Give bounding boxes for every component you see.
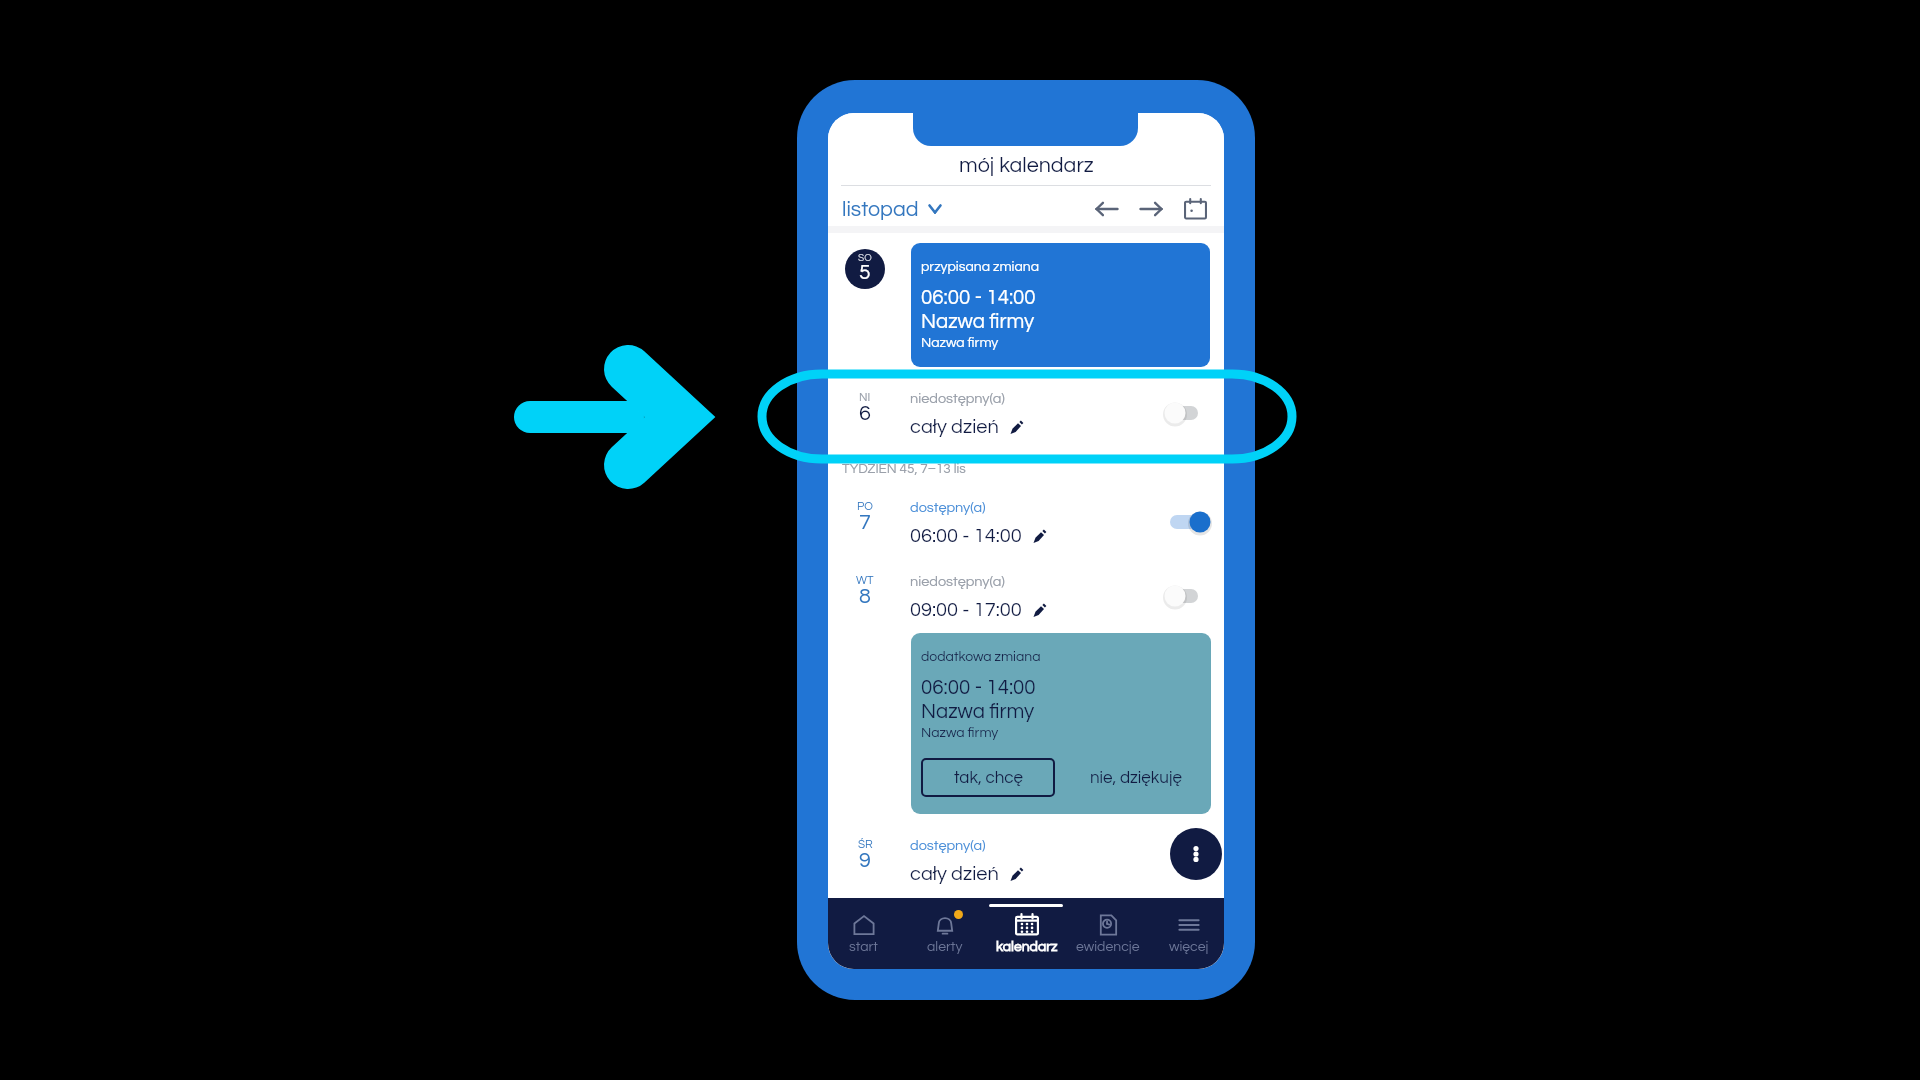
staticText: cały dzień [910, 417, 999, 438]
staticText: dostępny(a) [910, 500, 986, 515]
staticText: mój kalendarz [959, 154, 1094, 176]
staticText: Nazwa firmy [921, 311, 1035, 332]
button[interactable] [828, 827, 1224, 893]
button[interactable] [828, 380, 1224, 446]
button[interactable]: ewidencje [1074, 913, 1142, 954]
button[interactable] [828, 489, 1224, 555]
button[interactable]: kalendarz [994, 913, 1060, 954]
button[interactable] [828, 563, 1224, 629]
staticText: 06:00 - 14:00 [921, 287, 1036, 308]
staticText: listopad [842, 198, 919, 220]
staticText: alerty [927, 940, 963, 954]
button[interactable]: tak, chcę [921, 758, 1055, 797]
button[interactable]: listopad [842, 198, 946, 220]
button[interactable]: alerty [925, 913, 965, 954]
staticText: niedostępny(a) [910, 391, 1005, 406]
staticText: Nazwa firmy [921, 701, 1035, 722]
button[interactable]: dodatkowa zmiana [911, 633, 1211, 814]
staticText: PO [857, 501, 873, 513]
staticText: 8 [859, 585, 871, 607]
staticText: tak, chcę [954, 769, 1023, 787]
staticText: dodatkowa zmiana [921, 650, 1041, 664]
button[interactable]: Next month [1136, 194, 1166, 224]
button[interactable]: nie, dziękuję [1076, 758, 1196, 797]
button[interactable]: Go to date [1180, 194, 1210, 224]
staticText: ewidencje [1076, 940, 1140, 954]
staticText: kalendarz [996, 940, 1058, 954]
staticText: TYDZIEŃ 45, 7–13 lis [842, 462, 966, 476]
button[interactable]: More options [1170, 828, 1222, 880]
staticText: więcej [1169, 940, 1209, 954]
staticText: WT [856, 575, 874, 587]
staticText: Nazwa firmy [921, 726, 999, 740]
button[interactable]: przypisana zmiana [911, 243, 1210, 367]
staticText: nie, dziękuję [1090, 769, 1182, 787]
staticText: niedostępny(a) [910, 574, 1005, 589]
staticText: 9 [859, 849, 871, 871]
staticText: cały dzień [910, 864, 999, 885]
staticText: ŚR [858, 839, 873, 851]
staticText: 09:00 - 17:00 [910, 600, 1022, 621]
staticText: dostępny(a) [910, 838, 986, 853]
staticText: przypisana zmiana [921, 260, 1040, 274]
staticText: 06:00 - 14:00 [921, 677, 1036, 698]
button[interactable]: więcej [1167, 913, 1211, 954]
staticText: 7 [859, 511, 871, 533]
staticText: Nazwa firmy [921, 336, 999, 350]
staticText: 5 [859, 262, 871, 284]
staticText: 6 [859, 402, 871, 424]
staticText: start [849, 940, 878, 954]
button[interactable]: start [847, 913, 880, 954]
staticText: SO [858, 253, 872, 263]
staticText: NI [859, 392, 871, 404]
button[interactable]: Availability on [1166, 509, 1206, 535]
staticText: 06:00 - 14:00 [910, 526, 1022, 547]
button[interactable]: Availability off [1166, 400, 1206, 426]
button[interactable]: Availability off [1166, 583, 1206, 609]
button[interactable]: Previous month [1092, 194, 1122, 224]
